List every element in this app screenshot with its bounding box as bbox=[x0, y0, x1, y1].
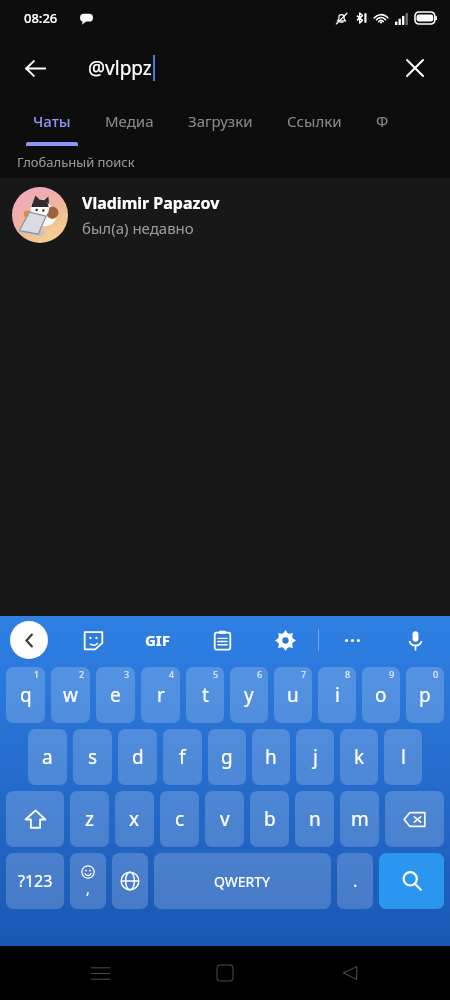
button[interactable]: y bbox=[230, 667, 268, 723]
button[interactable]: p bbox=[406, 667, 444, 723]
staticText: i bbox=[335, 682, 340, 708]
button[interactable]: GIF bbox=[139, 624, 176, 656]
button[interactable]: . bbox=[337, 853, 373, 909]
staticText: y bbox=[244, 682, 254, 708]
button[interactable]: Recent apps bbox=[75, 948, 125, 998]
staticText: e bbox=[110, 682, 121, 708]
staticText: Ф bbox=[376, 111, 389, 131]
staticText: 0 bbox=[433, 668, 439, 680]
staticText: 1 bbox=[34, 668, 40, 680]
staticText: QWERTY bbox=[214, 872, 271, 891]
staticText: n bbox=[309, 806, 321, 832]
staticText: p bbox=[419, 682, 431, 708]
button[interactable]: Медиа bbox=[88, 100, 171, 146]
button[interactable]: c bbox=[160, 791, 199, 847]
button[interactable]: Чаты bbox=[16, 100, 88, 146]
button[interactable]: f bbox=[163, 729, 202, 785]
staticText: g bbox=[221, 744, 233, 770]
staticText: b bbox=[264, 806, 276, 832]
button[interactable]: t bbox=[186, 667, 224, 723]
staticText: j bbox=[313, 744, 318, 770]
button[interactable]: Back bbox=[325, 948, 375, 998]
button[interactable]: w bbox=[51, 667, 90, 723]
staticText: @vlppz bbox=[88, 55, 152, 81]
button[interactable]: a bbox=[28, 729, 67, 785]
button[interactable]: r bbox=[141, 667, 180, 723]
staticText: 2 bbox=[79, 668, 85, 680]
staticText: 7 bbox=[301, 668, 307, 680]
staticText: 9 bbox=[389, 668, 395, 680]
staticText: был(а) недавно bbox=[82, 218, 194, 238]
button[interactable]: Home bbox=[200, 948, 250, 998]
button[interactable]: h bbox=[252, 729, 290, 785]
button[interactable]: Emoji and comma bbox=[70, 853, 106, 909]
button[interactable]: u bbox=[274, 667, 312, 723]
button[interactable]: Загрузки bbox=[171, 100, 270, 146]
staticText: . bbox=[353, 870, 358, 892]
staticText: w bbox=[63, 682, 78, 708]
button[interactable]: m bbox=[340, 791, 379, 847]
button[interactable]: Vladimir Papazov bbox=[0, 178, 450, 252]
button[interactable]: k bbox=[340, 729, 378, 785]
button[interactable]: g bbox=[208, 729, 246, 785]
button[interactable]: QWERTY bbox=[154, 853, 331, 909]
button[interactable]: Hide panel bbox=[10, 621, 48, 659]
staticText: 5 bbox=[213, 668, 219, 680]
staticText: x bbox=[129, 806, 140, 832]
staticText: v bbox=[220, 806, 230, 832]
staticText: d bbox=[132, 744, 144, 770]
button[interactable]: v bbox=[205, 791, 244, 847]
staticText: a bbox=[42, 744, 53, 770]
button[interactable]: l bbox=[384, 729, 422, 785]
button[interactable]: s bbox=[73, 729, 112, 785]
button[interactable]: Shift bbox=[6, 791, 64, 847]
staticText: 08:26 bbox=[24, 9, 58, 27]
staticText: q bbox=[20, 682, 32, 708]
staticText: Медиа bbox=[105, 111, 154, 131]
staticText: z bbox=[85, 806, 94, 832]
button[interactable]: ?123 bbox=[6, 853, 64, 909]
staticText: m bbox=[351, 806, 369, 832]
staticText: l bbox=[401, 744, 406, 770]
button[interactable]: d bbox=[118, 729, 157, 785]
button[interactable]: Back bbox=[11, 44, 59, 92]
staticText: c bbox=[175, 806, 185, 832]
button[interactable]: j bbox=[296, 729, 334, 785]
staticText: Загрузки bbox=[188, 111, 253, 131]
button[interactable]: n bbox=[295, 791, 334, 847]
button[interactable]: More options bbox=[335, 623, 369, 657]
staticText: GIF bbox=[145, 630, 170, 650]
button[interactable]: b bbox=[250, 791, 289, 847]
button[interactable]: i bbox=[318, 667, 356, 723]
button[interactable]: Voice input bbox=[398, 623, 432, 657]
staticText: o bbox=[375, 682, 387, 708]
button[interactable]: Ф bbox=[359, 100, 406, 146]
staticText: 4 bbox=[169, 668, 175, 680]
button[interactable]: Keyboard settings bbox=[268, 623, 302, 657]
staticText: Глобальный поиск bbox=[17, 153, 135, 171]
button[interactable]: z bbox=[70, 791, 109, 847]
button[interactable]: Search bbox=[379, 853, 444, 909]
staticText: k bbox=[354, 744, 365, 770]
staticText: 8 bbox=[345, 668, 351, 680]
button[interactable]: o bbox=[362, 667, 400, 723]
staticText: 6 bbox=[257, 668, 263, 680]
staticText: , bbox=[86, 879, 90, 898]
button[interactable]: Stickers bbox=[76, 623, 110, 657]
button[interactable]: e bbox=[96, 667, 135, 723]
staticText: f bbox=[179, 744, 186, 770]
button[interactable]: Clear search bbox=[391, 44, 439, 92]
staticText: t bbox=[202, 682, 209, 708]
staticText: h bbox=[265, 744, 277, 770]
button[interactable]: q bbox=[6, 667, 45, 723]
button[interactable]: Change language bbox=[112, 853, 148, 909]
staticText: Vladimir Papazov bbox=[82, 192, 220, 214]
staticText: u bbox=[287, 682, 299, 708]
staticText: r bbox=[157, 682, 165, 708]
button[interactable]: Clipboard bbox=[205, 623, 239, 657]
button[interactable]: x bbox=[115, 791, 154, 847]
button[interactable]: Ссылки bbox=[270, 100, 359, 146]
staticText: Ссылки bbox=[287, 111, 342, 131]
button[interactable]: Backspace bbox=[385, 791, 444, 847]
staticText: s bbox=[88, 744, 98, 770]
